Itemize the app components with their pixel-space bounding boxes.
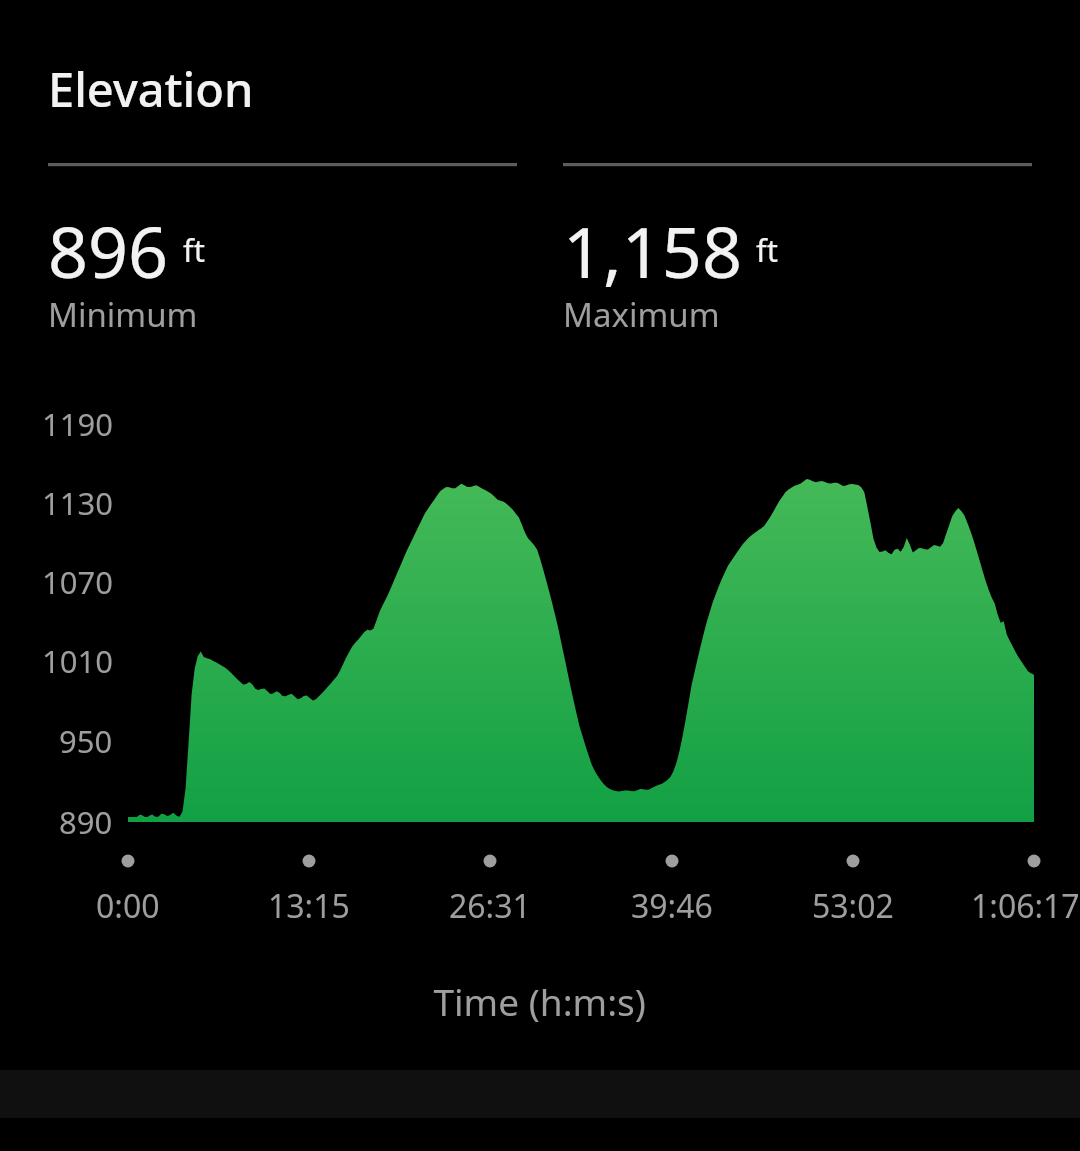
button[interactable]: Elevation chart xyxy=(0,0,1080,1151)
